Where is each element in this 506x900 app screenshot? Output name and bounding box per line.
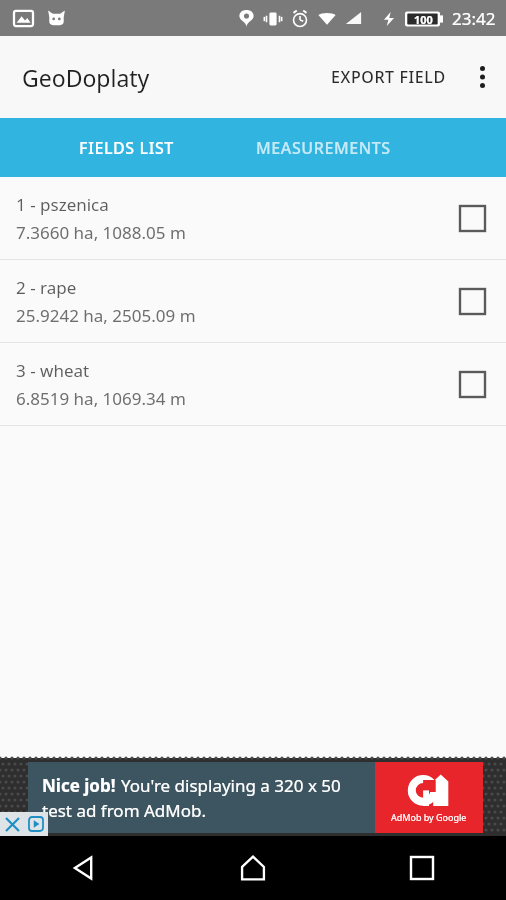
staticText: 25.9242 ha, 2505.09 m xyxy=(16,304,196,327)
staticText: 100 xyxy=(414,12,433,27)
button[interactable]: Close ad xyxy=(0,812,24,836)
staticText: test ad from AdMob. xyxy=(42,799,206,822)
staticText: 7.3660 ha, 1088.05 m xyxy=(16,221,186,244)
staticText: MEASUREMENTS xyxy=(256,137,391,159)
button[interactable]: Select field xyxy=(448,194,496,242)
staticText: GeoDoplaty xyxy=(22,62,150,93)
button[interactable]: Home xyxy=(168,836,337,900)
button[interactable]: MEASUREMENTS xyxy=(253,118,506,177)
staticText: FIELDS LIST xyxy=(79,137,174,159)
staticText: 2 - rape xyxy=(16,276,77,299)
button[interactable]: FIELDS LIST xyxy=(0,118,253,177)
button[interactable]: EXPORT FIELD xyxy=(319,52,458,102)
staticText: 6.8519 ha, 1069.34 m xyxy=(16,387,186,410)
staticText: 1 - pszenica xyxy=(16,193,109,216)
staticText: 3 - wheat xyxy=(16,359,90,382)
button[interactable]: More options xyxy=(458,53,506,101)
button[interactable]: 2 - rape xyxy=(0,260,506,342)
button[interactable]: 1 - pszenica xyxy=(0,177,506,259)
button[interactable]: Recent apps xyxy=(337,836,506,900)
staticText: Nice job! xyxy=(42,774,116,797)
staticText: You're displaying a 320 x 50 xyxy=(121,774,341,797)
staticText: EXPORT FIELD xyxy=(331,66,446,88)
staticText: 23:42 xyxy=(452,7,496,30)
button[interactable]: Ad choices xyxy=(24,812,48,836)
button[interactable]: Back xyxy=(0,836,168,900)
staticText: AdMob by Google xyxy=(391,811,467,823)
button[interactable]: 3 - wheat xyxy=(0,343,506,425)
button[interactable]: Advertisement xyxy=(0,758,506,836)
button[interactable]: Select field xyxy=(448,277,496,325)
button[interactable]: Select field xyxy=(448,360,496,408)
